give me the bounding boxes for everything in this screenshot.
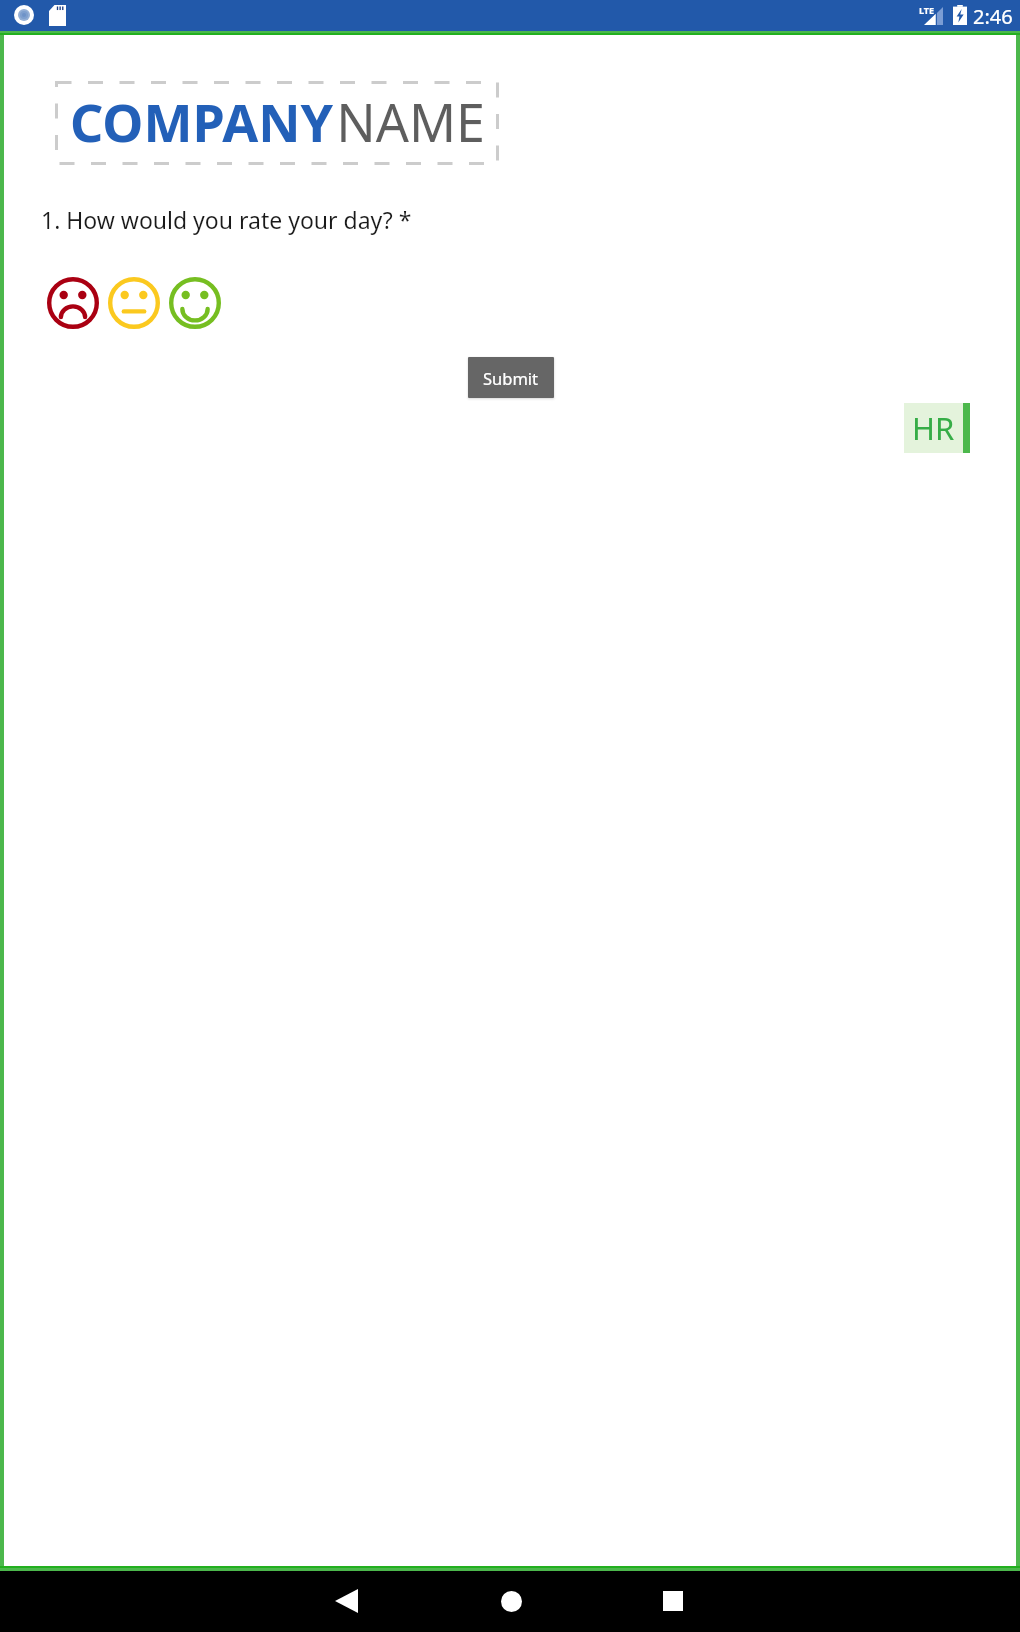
- button[interactable]: Back: [318, 1573, 374, 1629]
- button[interactable]: Rate good: [167, 275, 223, 331]
- button[interactable]: Recents: [645, 1573, 701, 1629]
- staticText: Submit: [483, 367, 539, 389]
- button[interactable]: Rate bad: [45, 275, 101, 331]
- staticText: COMPANY NAME: [70, 86, 485, 157]
- staticText: 1. How would you rate your day? *: [41, 204, 412, 235]
- button[interactable]: Submit: [468, 357, 554, 398]
- button[interactable]: HR: [904, 403, 970, 453]
- staticText: LTE: [919, 4, 935, 16]
- button[interactable]: Rate neutral: [106, 275, 162, 331]
- staticText: 2:46: [973, 3, 1013, 30]
- staticText: HR: [912, 407, 955, 449]
- button[interactable]: Home: [483, 1573, 539, 1629]
